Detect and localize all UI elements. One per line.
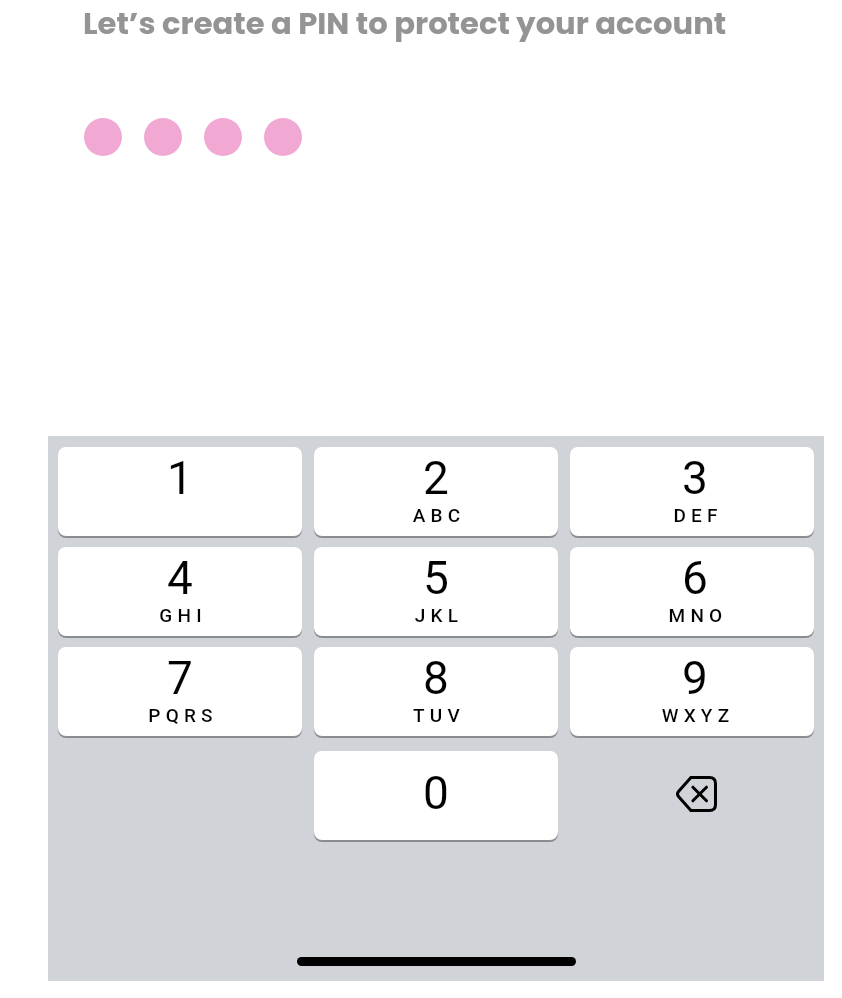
staticText: 4 (58, 551, 302, 605)
button[interactable]: 0 (314, 751, 558, 840)
button[interactable]: 5 (314, 547, 558, 636)
staticText: 3 (573, 451, 814, 505)
staticText: JKL (317, 604, 558, 626)
staticText: 2 (314, 451, 558, 505)
button[interactable]: 7 (58, 647, 302, 736)
button[interactable]: Backspace (570, 751, 814, 840)
button[interactable]: 2 (314, 447, 558, 536)
button[interactable]: 9 (570, 647, 814, 736)
staticText: 7 (58, 651, 302, 705)
staticText: 0 (314, 766, 558, 820)
button[interactable]: 1 (58, 447, 302, 536)
staticText: 5 (314, 551, 558, 605)
staticText: 1 (58, 451, 302, 505)
staticText: TUV (317, 704, 558, 726)
staticText: PQRS (61, 704, 302, 726)
staticText: 9 (573, 651, 814, 705)
button[interactable]: 3 (570, 447, 814, 536)
staticText: 8 (314, 651, 558, 705)
staticText: ABC (317, 504, 558, 526)
button[interactable]: 6 (570, 547, 814, 636)
staticText: DEF (576, 504, 814, 526)
staticText: Let’s create a PIN to protect your accou… (83, 2, 727, 45)
button[interactable]: 4 (58, 547, 302, 636)
staticText: MNO (576, 604, 814, 626)
staticText: WXYZ (576, 704, 814, 726)
staticText: GHI (61, 604, 302, 626)
button[interactable]: 8 (314, 647, 558, 736)
staticText: 6 (573, 551, 814, 605)
